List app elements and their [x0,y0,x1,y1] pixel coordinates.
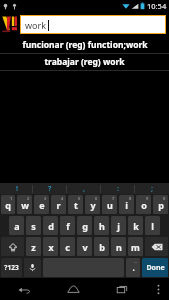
staticText: 8 [129,196,132,201]
button[interactable]: j [111,216,126,235]
staticText: … [134,259,138,264]
staticText: . [132,262,135,273]
button[interactable]: Done [142,258,168,277]
button[interactable]: e [34,195,49,214]
staticText: e [39,199,45,211]
staticText: 10:54 [147,1,167,11]
button[interactable]: ?123 [1,258,22,277]
staticText: b [99,241,105,253]
staticText: g [82,220,88,232]
staticText: z [31,241,36,253]
button[interactable]: u [102,195,117,214]
button[interactable]: y [85,195,100,214]
staticText: 3 [44,196,47,201]
button[interactable]: s [26,216,41,235]
button[interactable]: ? [33,183,67,194]
staticText: 5 [78,196,81,201]
staticText: 1 [10,196,13,201]
staticText: 9 [146,196,149,201]
button[interactable]: f [60,216,75,235]
button[interactable]: t [68,195,83,214]
button[interactable]: , [67,183,101,194]
other: Voice input [24,258,41,277]
button[interactable]: ; [135,183,169,194]
staticText: trabajar (reg) work [44,56,125,68]
button[interactable]: : [101,183,135,194]
button[interactable]: c [60,237,75,256]
button[interactable]: p [153,195,168,214]
staticText: ? [48,184,52,194]
staticText: d [48,220,54,232]
button[interactable]: h [94,216,109,235]
staticText: t [74,199,78,211]
button[interactable]: funcionar (reg) function;work [0,37,169,53]
button[interactable]: w [17,195,32,214]
staticText: k [133,220,139,232]
button[interactable]: App logo [0,12,20,37]
button[interactable]: trabajar (reg) work [0,54,169,70]
staticText: Done [146,263,165,273]
staticText: x [48,241,54,253]
button[interactable]: Backspace [145,237,168,256]
staticText: funcionar (reg) function;work [22,39,148,51]
button[interactable]: i [119,195,134,214]
staticText: n [116,241,122,253]
staticText: f [66,220,70,232]
staticText: y [90,199,96,211]
button[interactable]: z [26,237,41,256]
staticText: ; [151,184,153,194]
staticText: c [65,241,70,253]
button[interactable]: Home [49,278,98,300]
staticText: s [31,220,36,232]
staticText: , [83,184,85,194]
staticText: 7 [112,196,115,201]
button[interactable]: q [1,195,15,214]
button[interactable]: Shift [1,237,24,256]
button[interactable]: a [9,216,24,235]
staticText: m [131,241,140,253]
staticText: o [141,199,147,211]
staticText: r [56,199,61,211]
button[interactable]: d [43,216,58,235]
button[interactable]: . [126,258,140,277]
staticText: 2 [27,196,30,201]
button[interactable]: m [128,237,143,256]
other: Backspace [145,237,168,256]
staticText: ! [16,184,18,194]
staticText: h [99,220,105,232]
button[interactable]: v [77,237,92,256]
staticText: 6 [95,196,98,201]
button[interactable]: r [51,195,66,214]
button[interactable]: work [20,15,166,34]
staticText: l [151,220,154,232]
staticText: a [14,220,20,232]
staticText: : [117,184,119,194]
button[interactable]: Voice input [24,258,41,277]
button[interactable]: o [136,195,151,214]
button[interactable]: k [128,216,143,235]
button[interactable]: ! [0,183,33,194]
staticText: p [158,199,164,211]
staticText: q [5,199,11,211]
staticText: 4 [61,196,64,201]
button[interactable]: x [43,237,58,256]
staticText: ?123 [4,263,19,272]
button[interactable]: Back [0,278,49,300]
button[interactable]: l [145,216,160,235]
staticText: w [21,199,29,211]
button[interactable]: Recent apps [98,278,147,300]
button[interactable]: More options [147,278,169,300]
staticText: u [107,199,113,211]
other: Shift [1,237,24,256]
button[interactable]: b [94,237,109,256]
button[interactable]: n [111,237,126,256]
staticText: i [125,199,128,211]
staticText: v [82,241,88,253]
staticText: work [25,19,47,31]
button[interactable]: g [77,216,92,235]
staticText: 0 [163,196,166,201]
staticText: j [117,220,120,232]
